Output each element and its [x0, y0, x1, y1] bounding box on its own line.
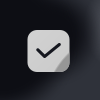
button[interactable]: Done	[27, 30, 69, 72]
